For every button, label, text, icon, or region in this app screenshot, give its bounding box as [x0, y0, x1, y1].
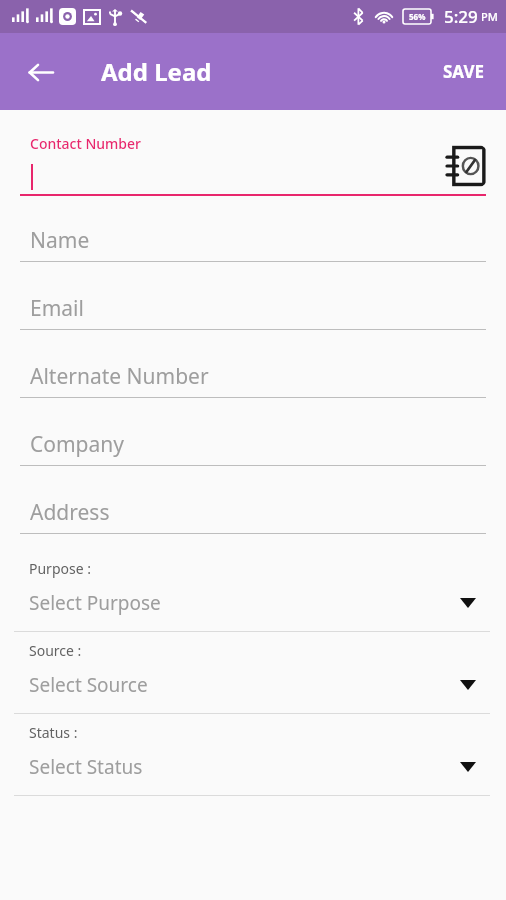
staticText: PM	[481, 9, 498, 24]
staticText: Select Purpose	[29, 590, 161, 616]
button[interactable]: Address	[0, 496, 506, 534]
staticText: Address	[30, 498, 110, 527]
staticText: Select Source	[29, 672, 148, 698]
staticText: Purpose :	[29, 559, 91, 578]
staticText: Company	[30, 430, 124, 459]
button[interactable]: Company	[0, 428, 506, 466]
button[interactable]: Alternate Number	[0, 360, 506, 398]
button[interactable]: Contact Number	[0, 134, 506, 196]
button[interactable]: Email	[0, 292, 506, 330]
button[interactable]: SAVE	[430, 48, 498, 95]
staticText: Alternate Number	[30, 362, 209, 391]
staticText: Add Lead	[101, 55, 212, 88]
button[interactable]: Back	[13, 45, 67, 99]
button[interactable]: Name	[0, 224, 506, 262]
staticText: Contact Number	[30, 134, 142, 153]
button[interactable]: Source :	[0, 632, 506, 714]
staticText: 5:29	[444, 5, 478, 28]
staticText: Email	[30, 294, 84, 323]
staticText: Name	[30, 226, 90, 255]
staticText: Status :	[29, 723, 78, 742]
staticText: 56%	[409, 11, 426, 22]
button[interactable]: Purpose :	[0, 550, 506, 632]
staticText: Source :	[29, 641, 82, 660]
staticText: Select Status	[29, 754, 143, 780]
button[interactable]: Pick from contacts	[440, 140, 492, 192]
button[interactable]: Status :	[0, 714, 506, 796]
staticText: SAVE	[443, 60, 485, 83]
